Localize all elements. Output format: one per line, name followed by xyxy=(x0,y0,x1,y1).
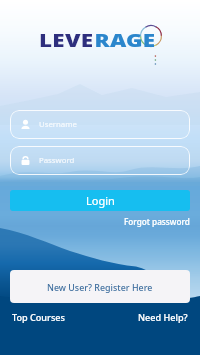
staticText: Login xyxy=(86,193,115,208)
staticText: RAGE xyxy=(94,29,156,52)
staticText: LEVE xyxy=(39,29,94,52)
button[interactable]: Password xyxy=(10,146,190,175)
staticText: Username xyxy=(39,119,77,130)
button[interactable]: Top Courses xyxy=(10,309,67,325)
button[interactable]: Forgot password xyxy=(124,216,190,227)
staticText: Password xyxy=(39,155,75,166)
button[interactable]: Need Help? xyxy=(136,309,190,325)
button[interactable]: New User? Register Here xyxy=(10,270,190,303)
staticText: New User? Register Here xyxy=(47,281,153,293)
button[interactable]: Login xyxy=(10,190,190,211)
button[interactable]: Username xyxy=(10,110,190,139)
